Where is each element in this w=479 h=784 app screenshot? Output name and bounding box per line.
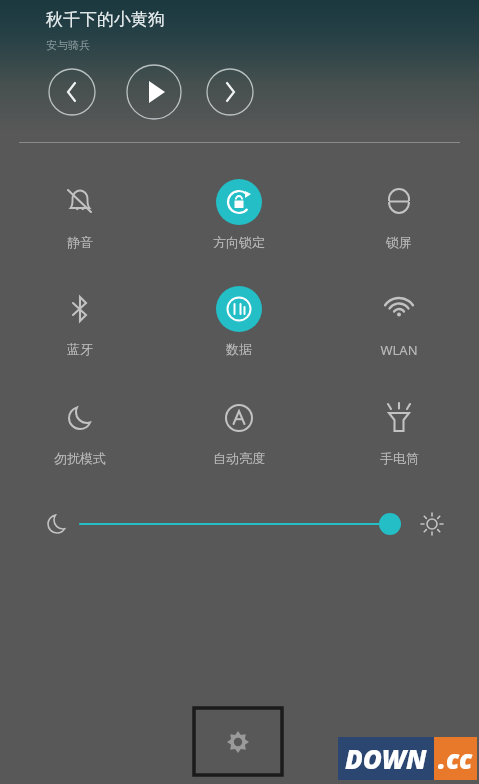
- button[interactable]: 自动亮度: [159, 395, 319, 466]
- button[interactable]: 数据: [159, 286, 319, 357]
- staticText: 勿扰模式: [54, 450, 106, 466]
- button[interactable]: 手电筒: [319, 395, 479, 466]
- staticText: 安与骑兵: [46, 38, 90, 52]
- button[interactable]: Brightness: [0, 504, 479, 544]
- staticText: 静音: [67, 234, 93, 250]
- staticText: 自动亮度: [213, 450, 265, 466]
- button[interactable]: WLAN: [319, 286, 479, 359]
- button[interactable]: Next track: [206, 68, 254, 116]
- button[interactable]: Play: [126, 64, 182, 120]
- button[interactable]: 蓝牙: [0, 286, 159, 357]
- staticText: 方向锁定: [213, 234, 265, 250]
- staticText: 秋千下的小黄狗: [46, 9, 165, 30]
- button[interactable]: 锁屏: [319, 179, 479, 250]
- staticText: 锁屏: [386, 234, 412, 250]
- button[interactable]: 静音: [0, 179, 159, 250]
- staticText: WLAN: [380, 341, 418, 359]
- staticText: DOWN: [345, 741, 427, 776]
- button[interactable]: Settings: [194, 708, 282, 775]
- button[interactable]: 方向锁定: [159, 179, 319, 250]
- staticText: .cc: [438, 741, 473, 776]
- button[interactable]: 勿扰模式: [0, 395, 159, 466]
- staticText: 蓝牙: [67, 341, 93, 357]
- button[interactable]: Previous track: [48, 68, 96, 116]
- staticText: 数据: [226, 341, 252, 357]
- staticText: 手电筒: [380, 450, 419, 466]
